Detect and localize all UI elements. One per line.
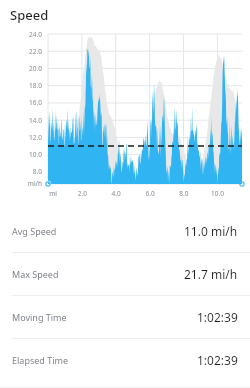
button[interactable]: Max Speed [0, 253, 250, 295]
staticText: Speed [10, 6, 49, 24]
button[interactable]: Moving Time [0, 296, 250, 338]
staticText: Moving Time [12, 311, 67, 323]
staticText: 11.0 mi/h [184, 223, 238, 239]
staticText: 1:02:39 [197, 352, 238, 368]
staticText: 21.7 mi/h [184, 266, 238, 282]
staticText: 1:02:39 [197, 309, 238, 325]
staticText: Elapsed Time [12, 354, 68, 366]
staticText: Max Speed [12, 268, 59, 280]
button[interactable]: Avg Speed [0, 210, 250, 252]
button[interactable]: Elapsed Time [0, 339, 250, 381]
staticText: Avg Speed [12, 225, 57, 237]
